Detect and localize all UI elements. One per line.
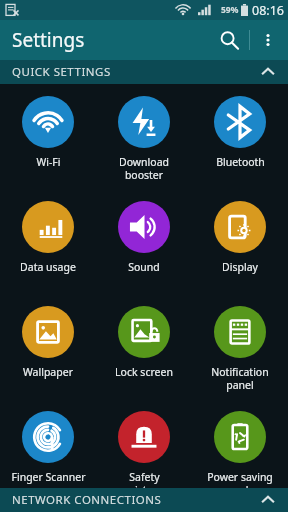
staticText: Power saving mode <box>207 470 273 488</box>
button[interactable]: More options <box>250 22 286 58</box>
staticText: Data usage <box>20 260 76 274</box>
staticText: Download booster <box>119 155 169 182</box>
button[interactable]: Wallpaper <box>0 294 96 399</box>
button[interactable]: Power saving mode <box>192 399 288 488</box>
other: Lock screen <box>118 306 170 358</box>
button[interactable]: NETWORK CONNECTIONS <box>0 488 288 512</box>
staticText: Notification panel <box>211 365 269 392</box>
other: Sound <box>118 201 170 253</box>
other: Safety assistance <box>118 411 170 463</box>
button[interactable]: Bluetooth <box>192 84 288 189</box>
button[interactable]: Finger Scanner <box>0 399 96 488</box>
other: Display <box>214 201 266 253</box>
button[interactable]: Display <box>192 189 288 294</box>
other: Power saving mode <box>214 411 266 463</box>
other: Bluetooth <box>214 96 266 148</box>
staticText: Bluetooth <box>216 155 265 169</box>
other: Notification panel <box>214 306 266 358</box>
other: Finger Scanner <box>22 411 74 463</box>
staticText: Sound <box>128 260 160 274</box>
button[interactable]: Data usage <box>0 189 96 294</box>
staticText: 59% <box>221 4 239 16</box>
other: Download booster <box>118 96 170 148</box>
other: Wallpaper <box>22 306 74 358</box>
staticText: Finger Scanner <box>11 470 86 484</box>
staticText: Display <box>222 260 258 274</box>
button[interactable]: QUICK SETTINGS <box>0 60 288 84</box>
button[interactable]: Search <box>209 20 249 60</box>
staticText: NETWORK CONNECTIONS <box>12 492 162 508</box>
staticText: QUICK SETTINGS <box>12 64 111 80</box>
button[interactable]: Wi-Fi <box>0 84 96 189</box>
other: Wi-Fi <box>22 96 74 148</box>
button[interactable]: Safety assistance <box>96 399 192 488</box>
staticText: Wi-Fi <box>36 155 61 169</box>
staticText: 08:16 <box>252 2 284 19</box>
button[interactable]: Notification panel <box>192 294 288 399</box>
staticText: Settings <box>12 27 85 53</box>
button[interactable]: Sound <box>96 189 192 294</box>
staticText: Safety assistance <box>119 470 170 488</box>
button[interactable]: Download booster <box>96 84 192 189</box>
staticText: Wallpaper <box>23 365 73 379</box>
staticText: Lock screen <box>115 365 173 379</box>
other: Data usage <box>22 201 74 253</box>
button[interactable]: Lock screen <box>96 294 192 399</box>
